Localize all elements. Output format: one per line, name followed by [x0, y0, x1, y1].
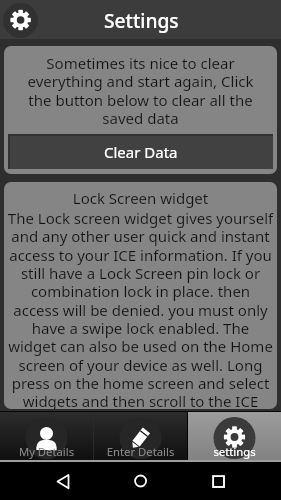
staticText: My Details — [0, 444, 93, 459]
staticText: Clear Data — [104, 142, 178, 162]
button[interactable]: Back — [55, 462, 89, 500]
staticText: settings — [188, 444, 281, 459]
staticText: Settings — [104, 7, 179, 33]
staticText: Enter Details — [94, 444, 187, 459]
button[interactable]: Enter Details — [94, 412, 187, 460]
button[interactable]: Recent apps — [201, 462, 235, 500]
button[interactable]: settings — [188, 412, 281, 460]
other: The Lock screen widget gives yourself an… — [4, 182, 277, 409]
other: Sometimes its nice to clear everything a… — [4, 46, 277, 174]
staticText: Lock Screen widget — [4, 188, 277, 208]
button[interactable]: My Details — [0, 412, 93, 460]
button[interactable]: Clear Data — [8, 134, 273, 169]
button[interactable]: Home — [124, 462, 158, 500]
button[interactable]: Settings — [3, 3, 38, 38]
